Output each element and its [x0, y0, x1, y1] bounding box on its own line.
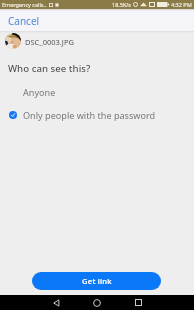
staticText: 18.5K/s: [112, 1, 131, 8]
button[interactable]: Cancel: [2, 11, 46, 31]
staticText: Anyone: [23, 86, 56, 98]
staticText: DSC_0003.JPG: [25, 37, 74, 47]
button[interactable]: Only people with the password: [0, 106, 194, 124]
button[interactable]: Recent apps: [130, 295, 146, 310]
staticText: Who can see this?: [8, 62, 91, 75]
staticText: Cancel: [8, 14, 40, 28]
button[interactable]: Back: [48, 295, 64, 310]
staticText: Get link: [82, 276, 112, 286]
button[interactable]: Anyone: [0, 83, 194, 101]
staticText: 4:32 PM: [171, 1, 192, 8]
staticText: Emergency calls..: [2, 1, 47, 8]
staticText: Only people with the password: [23, 109, 156, 121]
button[interactable]: Home: [89, 295, 105, 310]
button[interactable]: Get link: [32, 272, 161, 290]
